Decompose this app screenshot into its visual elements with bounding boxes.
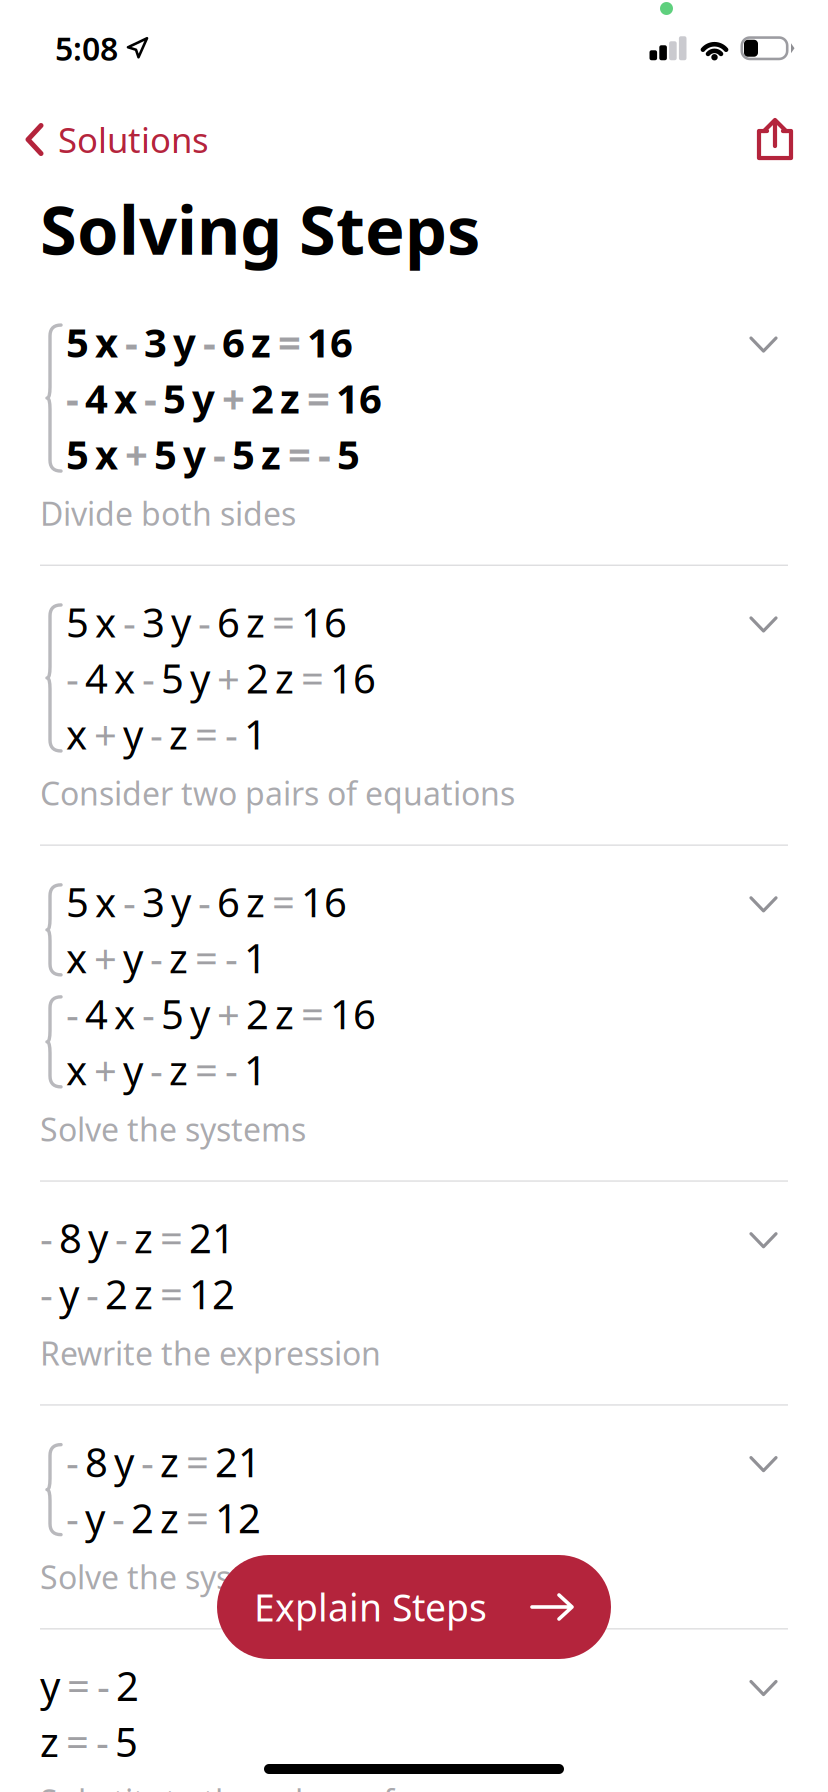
staticText: 8: [85, 1435, 108, 1488]
staticText: Solutions: [58, 116, 209, 162]
staticText: Substitute the values of: [40, 1779, 394, 1792]
staticText: x: [95, 595, 116, 648]
staticText: =: [160, 1267, 183, 1320]
staticText: 1: [244, 707, 267, 760]
staticText: 8: [59, 1211, 82, 1264]
staticText: y: [85, 1491, 105, 1544]
staticText: 5: [161, 651, 184, 704]
staticText: -: [203, 315, 216, 369]
staticText: 16: [307, 315, 353, 369]
staticText: =: [272, 595, 295, 648]
staticText: +: [94, 707, 117, 760]
staticText: Solve the systems: [40, 1556, 306, 1598]
staticText: Rewrite the expression: [40, 1332, 381, 1374]
staticText: x: [66, 707, 87, 760]
staticText: x: [114, 987, 135, 1040]
staticText: 5: [66, 315, 89, 369]
button[interactable]: Share: [731, 105, 828, 174]
staticText: z: [246, 875, 265, 928]
staticText: -: [40, 1211, 53, 1264]
staticText: z: [40, 1715, 59, 1768]
staticText: =: [288, 427, 311, 481]
staticText: -: [40, 1267, 53, 1320]
staticText: =: [195, 707, 218, 760]
staticText: 3: [142, 875, 165, 928]
staticText: y: [183, 427, 206, 481]
staticText: -: [142, 651, 155, 704]
staticText: 16: [330, 651, 376, 704]
staticText: +: [125, 427, 148, 481]
staticText: -: [150, 707, 163, 760]
staticText: Solve the systems: [40, 1108, 306, 1150]
staticText: 5: [66, 595, 89, 648]
staticText: z: [251, 315, 271, 369]
staticText: 4: [85, 371, 108, 425]
staticText: Consider two pairs of equations: [40, 772, 515, 814]
staticText: Solving Steps: [40, 184, 480, 273]
staticText: =: [67, 1659, 90, 1712]
staticText: 5: [337, 427, 360, 481]
staticText: -: [123, 875, 136, 928]
staticText: z: [134, 1211, 153, 1264]
staticText: y: [114, 1435, 134, 1488]
staticText: z: [169, 1043, 188, 1096]
staticText: 1: [244, 1043, 267, 1096]
staticText: y: [171, 595, 191, 648]
staticText: Divide both sides: [40, 492, 296, 535]
staticText: 5: [154, 427, 177, 481]
staticText: z: [169, 931, 188, 984]
staticText: z: [275, 987, 294, 1040]
button[interactable]: Explain Steps: [217, 1555, 611, 1659]
staticText: =: [301, 651, 324, 704]
staticText: +: [94, 1043, 117, 1096]
staticText: 2: [246, 987, 269, 1040]
staticText: -: [86, 1267, 99, 1320]
staticText: 2: [105, 1267, 128, 1320]
staticText: =: [66, 1715, 89, 1768]
staticText: x: [95, 427, 118, 481]
staticText: y: [192, 371, 215, 425]
staticText: y: [40, 1659, 60, 1712]
staticText: 4: [85, 651, 108, 704]
staticText: -: [96, 1715, 109, 1768]
staticText: =: [195, 1043, 218, 1096]
staticText: 2: [116, 1659, 139, 1712]
staticText: 16: [301, 875, 347, 928]
staticText: 5: [232, 427, 255, 481]
staticText: z: [134, 1267, 153, 1320]
staticText: 21: [189, 1211, 235, 1264]
staticText: -: [144, 371, 157, 425]
staticText: z: [160, 1435, 179, 1488]
staticText: 3: [144, 315, 167, 369]
staticText: =: [301, 987, 324, 1040]
staticText: z: [160, 1491, 179, 1544]
staticText: 16: [330, 987, 376, 1040]
staticText: 12: [215, 1491, 261, 1544]
staticText: +: [217, 651, 240, 704]
staticText: -: [125, 315, 138, 369]
staticText: -: [66, 1435, 79, 1488]
staticText: 5: [163, 371, 186, 425]
staticText: =: [272, 875, 295, 928]
staticText: 5:08: [55, 27, 118, 69]
staticText: x: [114, 371, 137, 425]
staticText: 6: [217, 595, 240, 648]
staticText: -: [225, 931, 238, 984]
staticText: z: [261, 427, 281, 481]
staticText: 6: [222, 315, 245, 369]
staticText: x: [66, 1043, 87, 1096]
staticText: 5: [66, 875, 89, 928]
staticText: y: [190, 987, 210, 1040]
staticText: y: [88, 1211, 108, 1264]
staticText: -: [66, 651, 79, 704]
staticText: y: [171, 875, 191, 928]
staticText: y: [123, 707, 143, 760]
staticText: -: [318, 427, 331, 481]
staticText: 12: [189, 1267, 235, 1320]
staticText: y: [190, 651, 210, 704]
button[interactable]: Solutions: [0, 102, 233, 176]
staticText: 4: [85, 987, 108, 1040]
staticText: x: [95, 315, 118, 369]
staticText: 3: [142, 595, 165, 648]
staticText: -: [141, 1435, 154, 1488]
